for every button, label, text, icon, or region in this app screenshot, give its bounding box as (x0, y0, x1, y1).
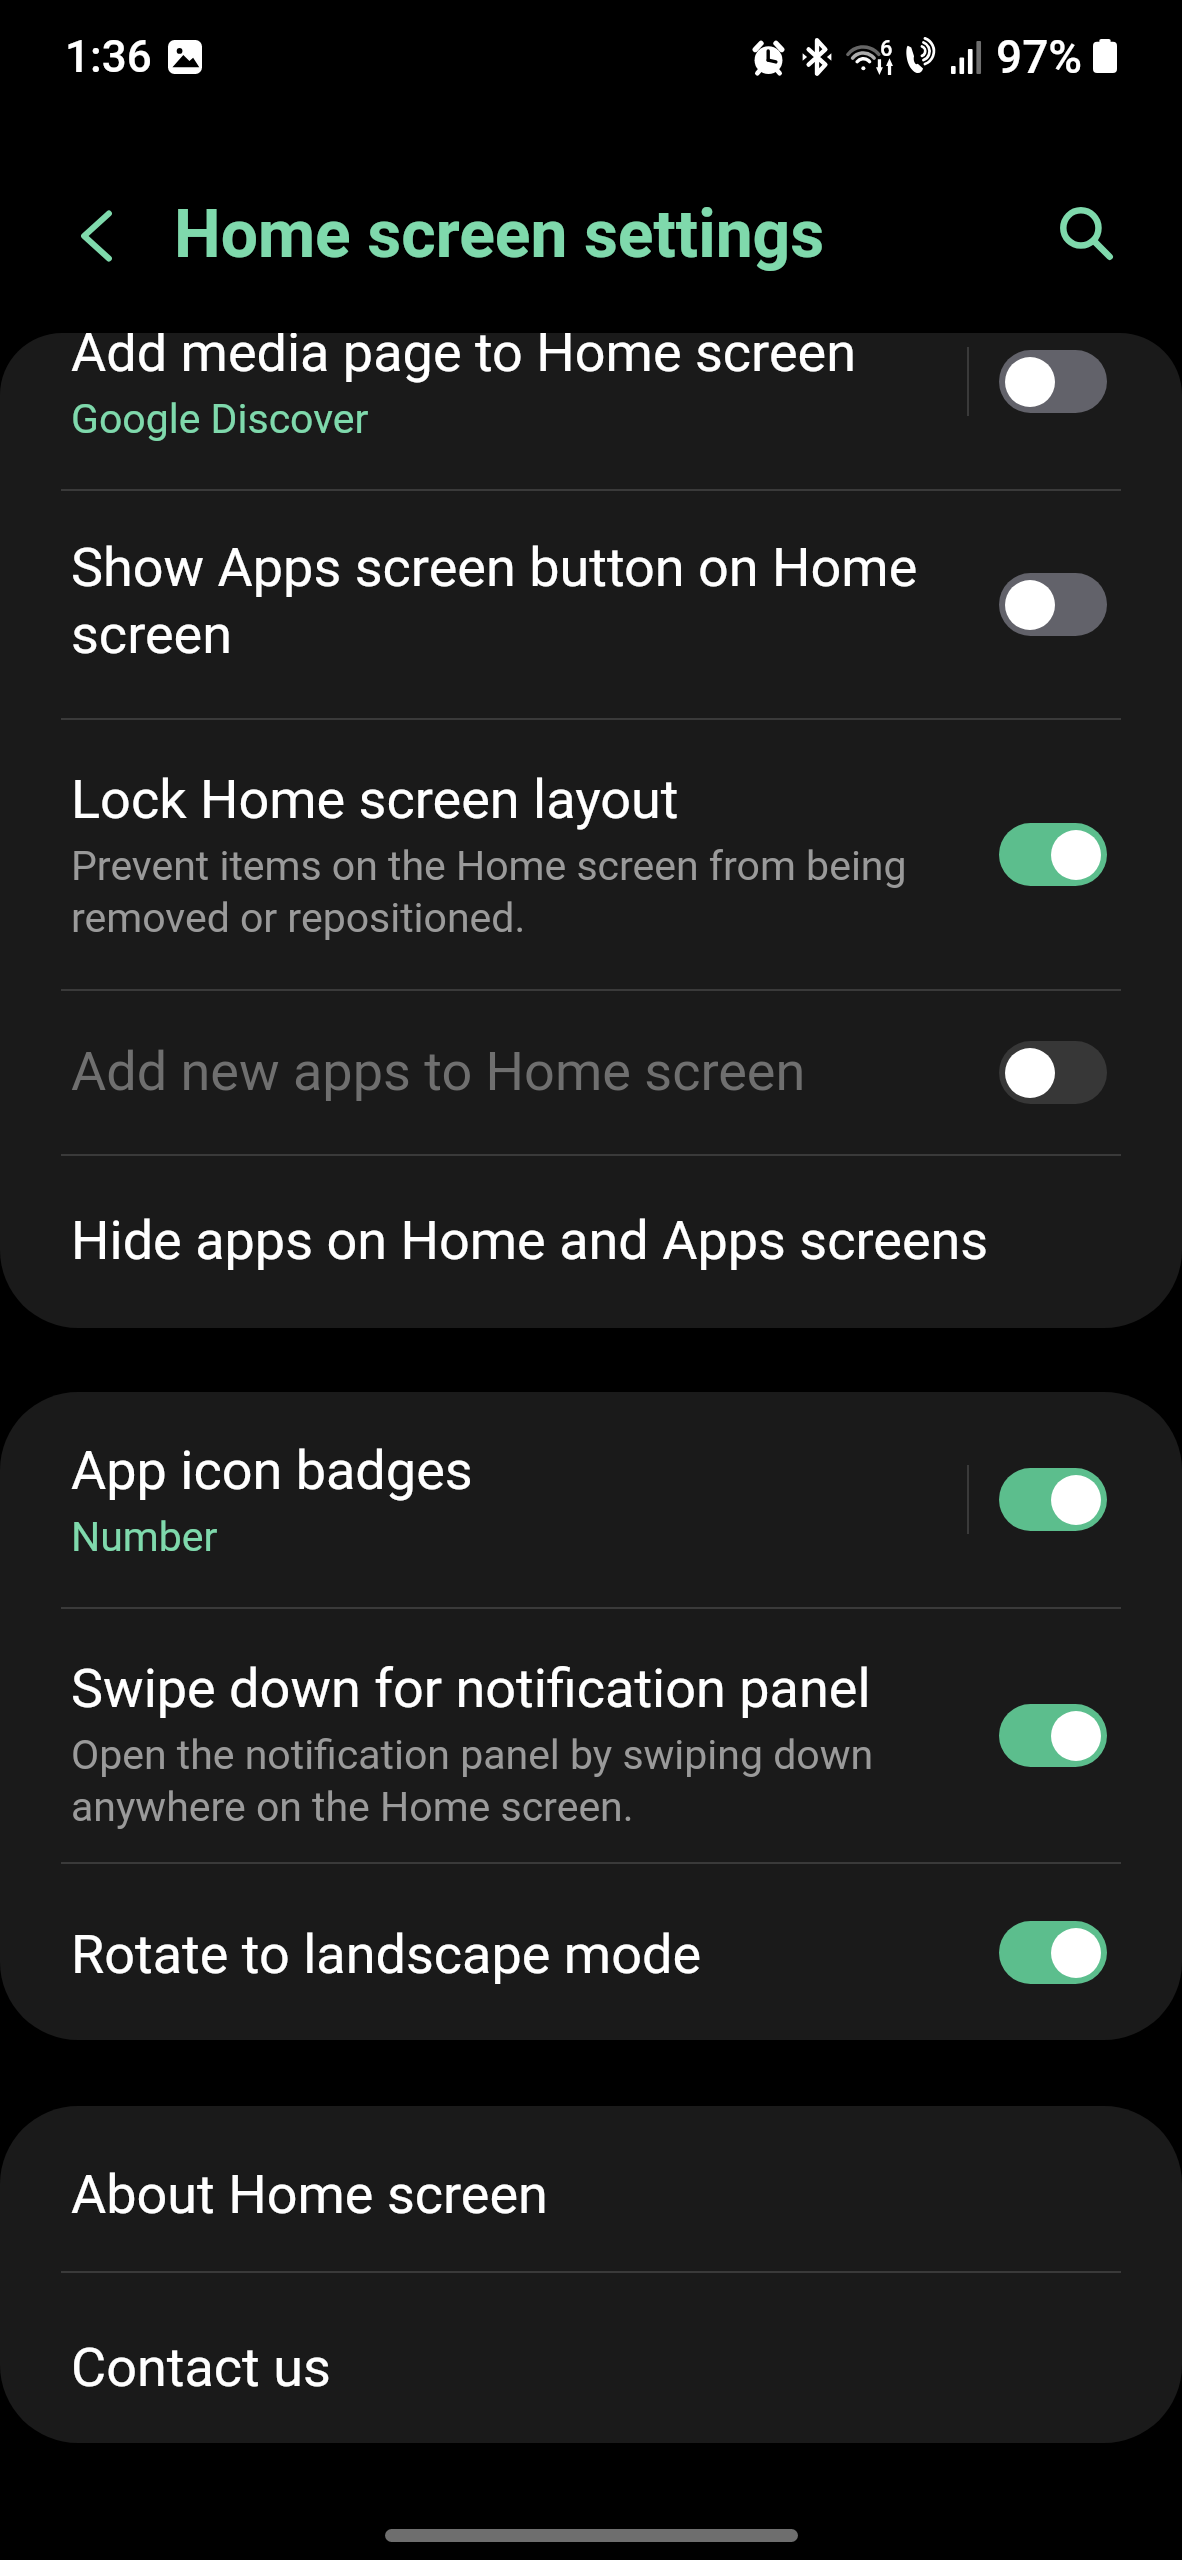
staticText: Prevent items on the Home screen from be… (71, 839, 1014, 943)
button[interactable]: Back (48, 188, 144, 284)
staticText: 6 (880, 36, 893, 62)
staticText: Lock Home screen layout (71, 765, 679, 832)
button[interactable]: Swipe down for notification panel (0, 1609, 1182, 1862)
button[interactable]: Contact us (0, 2273, 1182, 2443)
staticText: Google Discover (71, 392, 369, 444)
staticText: Number (71, 1510, 218, 1562)
button[interactable]: Hide apps on Home and Apps screens (0, 1156, 1182, 1269)
button[interactable]: Toggle Show Apps screen button on Home s… (999, 573, 1107, 636)
button[interactable]: Lock Home screen layout (0, 720, 1182, 989)
staticText: 97% (996, 30, 1083, 84)
button[interactable]: Show Apps screen button on Home screen (0, 491, 1182, 718)
button[interactable]: About Home screen (0, 2106, 1182, 2271)
staticText: Show Apps screen button on Home screen (71, 533, 1014, 667)
button[interactable]: Toggle Add media page to Home screen (999, 350, 1107, 413)
staticText: Open the notification panel by swiping d… (71, 1728, 1014, 1832)
button[interactable]: Search (1038, 185, 1134, 281)
button[interactable]: App icon badges (0, 1392, 1182, 1607)
staticText: Rotate to landscape mode (71, 1920, 702, 1987)
staticText: Hide apps on Home and Apps screens (71, 1206, 989, 1273)
button[interactable]: Toggle Add new apps to Home screen (999, 1041, 1107, 1104)
staticText: Home screen settings (174, 196, 825, 273)
button[interactable]: Toggle Lock Home screen layout (999, 823, 1107, 886)
button[interactable]: Add media page to Home screen (0, 333, 1182, 489)
button[interactable]: Toggle App icon badges (999, 1468, 1107, 1531)
staticText: 1:36 (65, 31, 152, 83)
button[interactable]: Toggle Rotate to landscape mode (999, 1921, 1107, 1984)
staticText: Swipe down for notification panel (71, 1654, 871, 1721)
button[interactable]: Add new apps to Home screen (0, 991, 1182, 1154)
button[interactable]: Rotate to landscape mode (0, 1864, 1182, 2040)
staticText: Add new apps to Home screen (71, 1037, 806, 1104)
staticText: Add media page to Home screen (71, 333, 856, 385)
button[interactable]: Toggle Swipe down for notification panel (999, 1704, 1107, 1767)
staticText: Contact us (71, 2333, 331, 2400)
staticText: About Home screen (71, 2160, 548, 2227)
staticText: App icon badges (71, 1436, 473, 1503)
